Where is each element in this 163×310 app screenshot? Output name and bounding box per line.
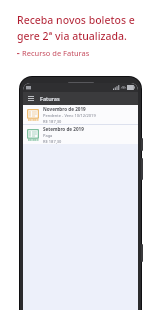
staticText: Novembro de 2019 (43, 106, 86, 112)
button[interactable]: Setembro de 2019 (23, 125, 138, 144)
staticText: gere 2ª via atualizada. (17, 29, 127, 43)
staticText: Pendente - Venc 10/12/2019 (43, 113, 96, 118)
button[interactable]: Novembro de 2019 (23, 105, 138, 124)
staticText: Faturas (40, 95, 60, 102)
staticText: Recurso de Faturas (22, 48, 90, 58)
staticText: R$ 187,30 (43, 139, 62, 144)
staticText: Receba novos boletos e (17, 13, 135, 27)
staticText: Paga (43, 133, 53, 138)
staticText: Setembro de 2019 (43, 126, 84, 132)
staticText: R$ 187,30 (43, 119, 62, 124)
button[interactable]: Open navigation menu (27, 95, 34, 102)
